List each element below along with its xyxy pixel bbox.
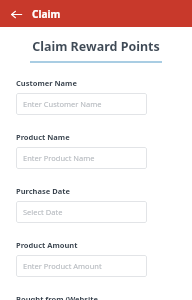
staticText: Claim (32, 7, 61, 21)
button[interactable]: Select Date (16, 201, 147, 223)
staticText: Product Name (16, 132, 70, 142)
staticText: Enter Product Amount (23, 261, 102, 271)
staticText: Purchase Date (16, 186, 70, 196)
staticText: Customer Name (16, 78, 77, 88)
button[interactable]: Back (6, 4, 26, 24)
staticText: Select Date (23, 207, 63, 217)
staticText: Product Amount (16, 240, 78, 250)
button[interactable]: Enter Product Name (16, 147, 147, 169)
staticText: Claim Reward Points (0, 38, 192, 55)
staticText: Bought from (Website (16, 294, 99, 300)
staticText: Enter Customer Name (23, 99, 102, 109)
staticText: Enter Product Name (23, 153, 95, 163)
button[interactable]: Enter Customer Name (16, 93, 147, 115)
button[interactable]: Enter Product Amount (16, 255, 147, 277)
